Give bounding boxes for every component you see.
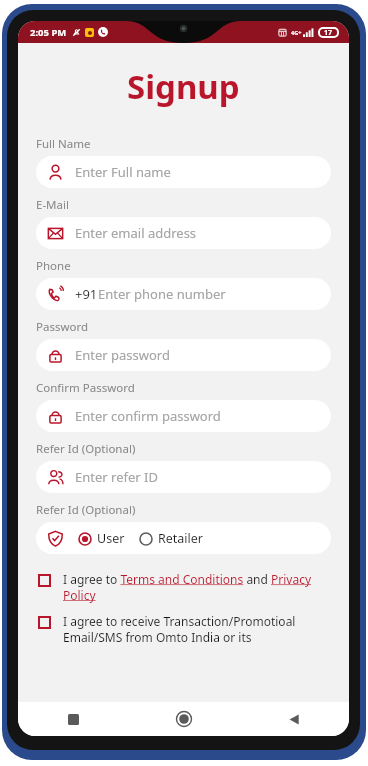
button[interactable]: +91 bbox=[36, 278, 331, 310]
button[interactable]: User bbox=[78, 530, 125, 547]
staticText: Full Name bbox=[36, 136, 91, 152]
staticText: Refer Id (Optional) bbox=[36, 502, 136, 518]
staticText: Enter password bbox=[75, 346, 170, 364]
button[interactable]: Back bbox=[239, 702, 349, 736]
staticText: Refer Id (Optional) bbox=[36, 441, 136, 457]
button[interactable]: Retailer bbox=[139, 530, 204, 547]
button[interactable]: Enter password bbox=[36, 339, 331, 371]
staticText: Password bbox=[36, 319, 89, 335]
staticText: Phone bbox=[36, 258, 71, 274]
staticText: Signup bbox=[127, 64, 240, 109]
button[interactable]: Enter confirm password bbox=[36, 400, 331, 432]
staticText: 17 bbox=[324, 28, 333, 38]
staticText: Confirm Password bbox=[36, 380, 135, 396]
staticText: I agree to Terms and Conditions and Priv… bbox=[63, 571, 329, 603]
staticText: Retailer bbox=[158, 530, 204, 547]
staticText: Enter confirm password bbox=[75, 407, 221, 425]
staticText: E-Mail bbox=[36, 197, 69, 213]
staticText: User bbox=[97, 530, 125, 547]
button[interactable]: Home bbox=[129, 702, 239, 736]
button[interactable]: I agree to Terms and Conditions and Priv… bbox=[38, 571, 329, 603]
staticText: I agree to receive Transaction/Promotioa… bbox=[63, 613, 329, 645]
button[interactable]: Enter email address bbox=[36, 217, 331, 249]
staticText: Enter Full name bbox=[75, 163, 171, 181]
button[interactable]: Enter Full name bbox=[36, 156, 331, 188]
staticText: Enter email address bbox=[75, 224, 197, 242]
staticText: Enter refer ID bbox=[75, 468, 158, 486]
button[interactable]: Recent apps bbox=[18, 702, 129, 736]
staticText: 4G+ bbox=[291, 29, 302, 36]
staticText: +91 bbox=[75, 285, 98, 303]
button[interactable]: I agree to receive Transaction/Promotioa… bbox=[38, 613, 329, 645]
button[interactable]: Enter refer ID bbox=[36, 461, 331, 493]
staticText: 2:05 PM bbox=[30, 26, 67, 39]
staticText: Enter phone number bbox=[98, 285, 226, 303]
